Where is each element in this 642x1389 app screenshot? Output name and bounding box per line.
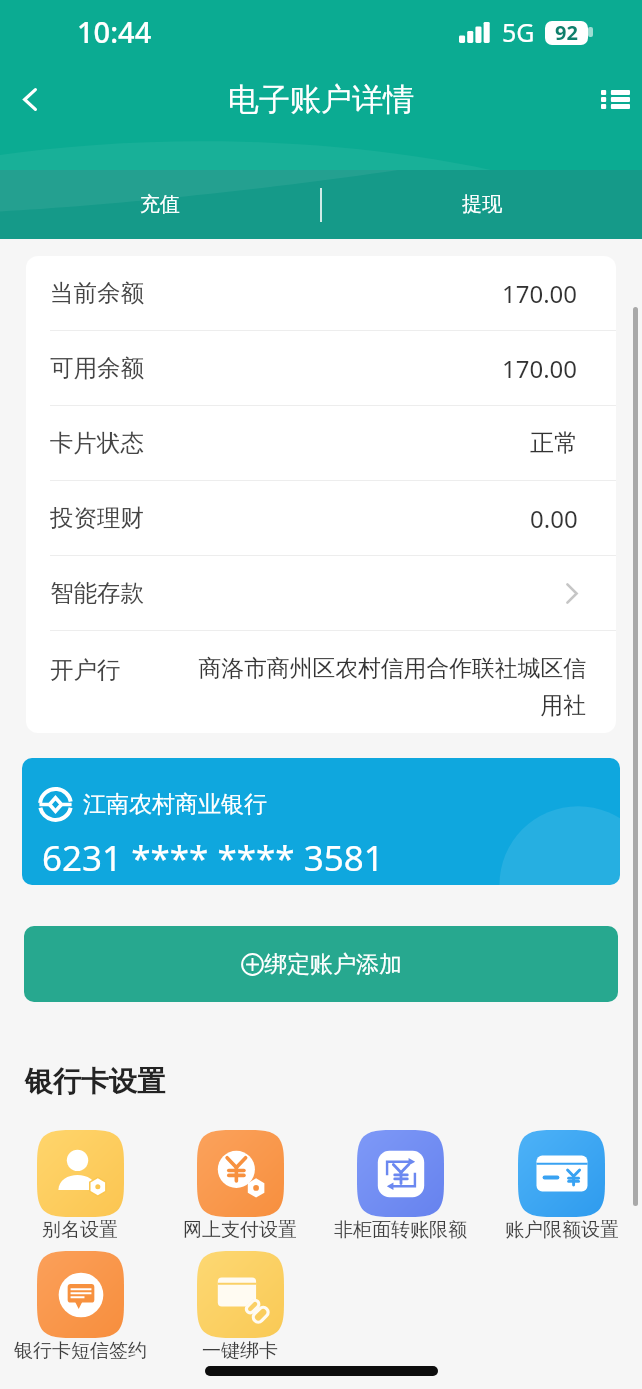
- button[interactable]: 网上支付设置: [160, 1130, 320, 1242]
- staticText: 可用余额: [50, 353, 144, 383]
- button[interactable]: 提现: [322, 170, 642, 239]
- button[interactable]: 江南农村商业银行: [22, 758, 620, 885]
- staticText: 170.00: [502, 352, 578, 385]
- staticText: 6231 **** **** 3581: [42, 834, 384, 882]
- staticText: 0.00: [530, 502, 578, 535]
- staticText: 一键绑卡: [202, 1339, 278, 1363]
- staticText: 卡片状态: [50, 428, 144, 458]
- staticText: 银行卡短信签约: [14, 1339, 147, 1363]
- button[interactable]: Back: [0, 72, 60, 126]
- button[interactable]: 账户限额设置: [481, 1130, 642, 1242]
- staticText: 5G: [502, 15, 535, 49]
- button[interactable]: 充值: [0, 170, 320, 239]
- button[interactable]: 可用余额: [26, 331, 616, 405]
- staticText: 正常: [530, 428, 578, 458]
- staticText: 智能存款: [50, 578, 144, 608]
- staticText: 投资理财: [50, 503, 144, 533]
- staticText: 银行卡设置: [25, 1064, 165, 1099]
- staticText: 92: [555, 19, 578, 46]
- staticText: 充值: [140, 192, 180, 217]
- button[interactable]: 一键绑卡: [160, 1251, 320, 1363]
- staticText: 电子账户详情: [228, 80, 414, 119]
- button[interactable]: 绑定账户添加: [24, 926, 618, 1002]
- staticText: 提现: [462, 192, 502, 217]
- staticText: 商洛市商州区农村信用合作联社城区信用社: [190, 654, 586, 719]
- staticText: 别名设置: [42, 1218, 118, 1242]
- staticText: 非柜面转账限额: [334, 1218, 467, 1242]
- button[interactable]: 银行卡短信签约: [0, 1251, 160, 1363]
- button[interactable]: 卡片状态: [26, 406, 616, 480]
- staticText: 170.00: [502, 277, 578, 310]
- button[interactable]: 投资理财: [26, 481, 616, 555]
- button[interactable]: 别名设置: [0, 1130, 160, 1242]
- staticText: 账户限额设置: [505, 1218, 619, 1242]
- button[interactable]: 非柜面转账限额: [320, 1130, 481, 1242]
- staticText: 江南农村商业银行: [83, 790, 267, 819]
- button[interactable]: 当前余额: [26, 256, 616, 330]
- button[interactable]: 开户行: [26, 631, 616, 733]
- staticText: 绑定账户添加: [264, 950, 402, 979]
- staticText: 开户行: [50, 655, 121, 685]
- button[interactable]: 智能存款: [26, 556, 616, 630]
- staticText: 网上支付设置: [183, 1218, 297, 1242]
- staticText: 10:44: [77, 12, 152, 51]
- staticText: 当前余额: [50, 278, 144, 308]
- button[interactable]: Menu: [588, 72, 642, 126]
